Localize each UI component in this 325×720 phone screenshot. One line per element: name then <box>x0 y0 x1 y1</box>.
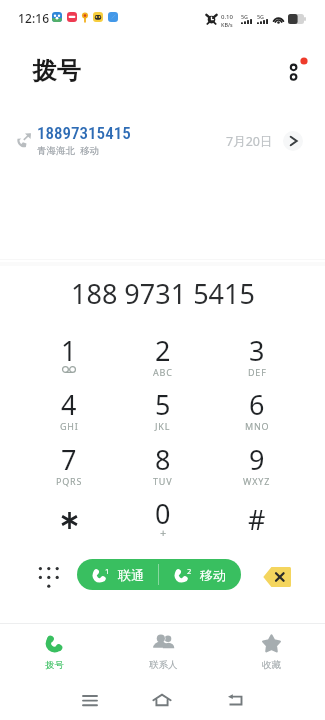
button[interactable]: 1 <box>77 559 158 590</box>
staticText: 联通 <box>118 567 144 583</box>
staticText: 18897315415 <box>37 123 131 143</box>
staticText: 5G <box>257 13 265 20</box>
staticText: 188 9731 5415 <box>71 275 255 311</box>
button[interactable]: 9 <box>210 439 304 493</box>
button[interactable]: 2 <box>159 559 241 590</box>
button[interactable]: More options <box>278 50 312 84</box>
button[interactable]: Back <box>218 683 252 717</box>
staticText: 2 <box>187 566 192 576</box>
staticText: KB/s <box>221 21 233 28</box>
staticText: 2 <box>155 332 171 369</box>
button[interactable]: 5 <box>116 384 210 438</box>
staticText: 拨号 <box>32 56 81 86</box>
staticText: 1 <box>61 332 77 369</box>
button[interactable]: 联系人 <box>109 624 217 678</box>
staticText: 拨号 <box>45 659 64 671</box>
staticText: 12:16 <box>18 10 50 26</box>
staticText: JKL <box>155 420 171 432</box>
button[interactable]: 1 <box>22 330 116 384</box>
button[interactable]: Home <box>145 683 179 717</box>
staticText: GHI <box>60 420 79 432</box>
button[interactable]: 3 <box>210 330 304 384</box>
button[interactable]: 4 <box>22 384 116 438</box>
button[interactable]: 8 <box>116 439 210 493</box>
button[interactable]: Hide keypad <box>32 562 66 596</box>
staticText: 收藏 <box>262 659 281 671</box>
staticText: 0 <box>155 495 171 532</box>
button[interactable]: 拨号 <box>0 624 109 678</box>
button[interactable]: 18897315415 <box>0 112 325 168</box>
button[interactable]: Backspace <box>263 567 291 587</box>
button[interactable]: 0 <box>116 493 210 547</box>
staticText: 9 <box>249 441 265 478</box>
staticText: 7 <box>61 441 77 478</box>
staticText: 0.10 <box>221 13 233 21</box>
staticText: PQRS <box>56 475 83 487</box>
button[interactable]: 6 <box>210 384 304 438</box>
button[interactable]: Recents <box>73 683 107 717</box>
staticText: 8 <box>155 441 171 478</box>
staticText: + <box>160 525 167 540</box>
staticText: 6 <box>249 386 265 423</box>
staticText: 联系人 <box>149 659 178 671</box>
button[interactable]: 收藏 <box>217 624 325 678</box>
staticText: ABC <box>153 366 173 378</box>
staticText: 移动 <box>200 567 226 583</box>
staticText: 1 <box>105 566 110 576</box>
button[interactable]: # <box>210 493 304 547</box>
staticText: 5 <box>155 386 171 423</box>
staticText: DEF <box>248 366 267 378</box>
staticText: 青海海北 移动 <box>37 144 99 157</box>
button[interactable] <box>22 493 116 547</box>
staticText: 7月20日 <box>226 133 273 150</box>
staticText: MNO <box>245 420 270 432</box>
staticText: WXYZ <box>243 475 271 487</box>
staticText: # <box>248 501 266 538</box>
staticText: TUV <box>153 475 173 487</box>
staticText: 3 <box>249 332 265 369</box>
button[interactable]: 7 <box>22 439 116 493</box>
button[interactable]: 2 <box>116 330 210 384</box>
staticText: 5G <box>241 13 249 20</box>
staticText: 4 <box>61 386 77 423</box>
